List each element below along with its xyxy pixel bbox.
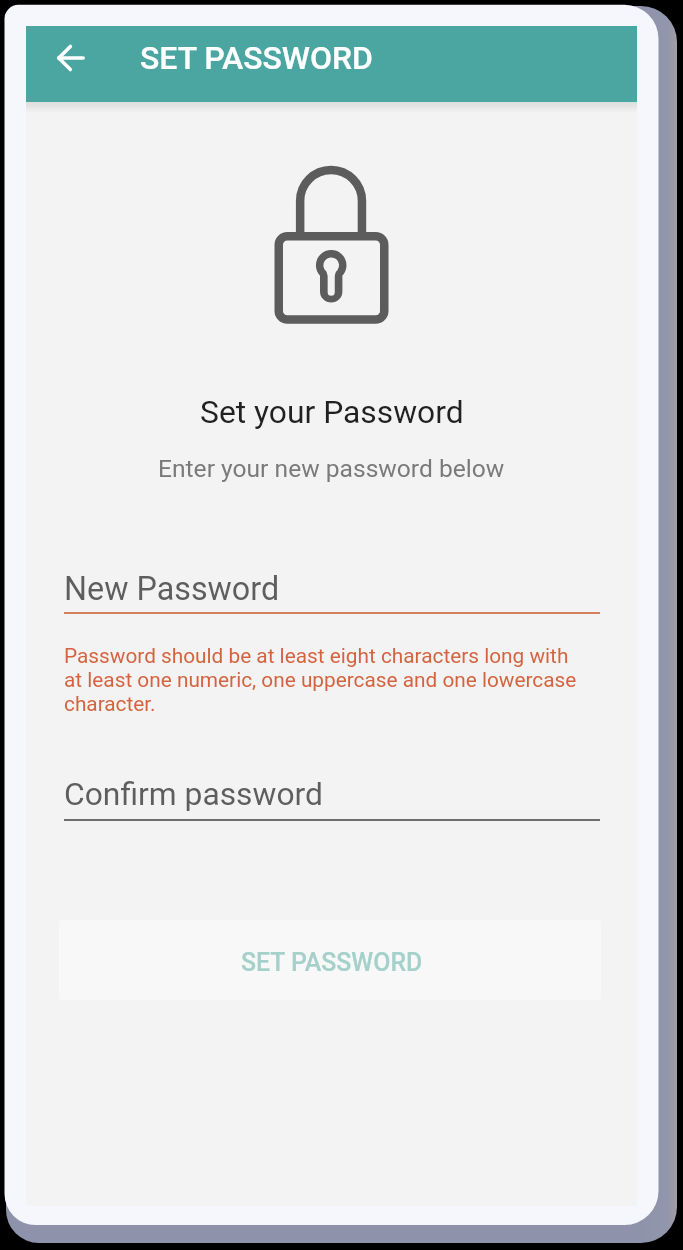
staticText: Password should be at least eight charac…: [64, 644, 584, 716]
staticText: SET PASSWORD: [241, 948, 423, 977]
button[interactable]: Back: [44, 33, 98, 83]
staticText: SET PASSWORD: [140, 39, 373, 77]
staticText: Set your Password: [200, 393, 464, 430]
button[interactable]: SET PASSWORD: [59, 920, 601, 1000]
staticText: Confirm password: [64, 775, 323, 812]
staticText: Enter your new password below: [158, 454, 505, 483]
staticText: New Password: [64, 570, 280, 608]
